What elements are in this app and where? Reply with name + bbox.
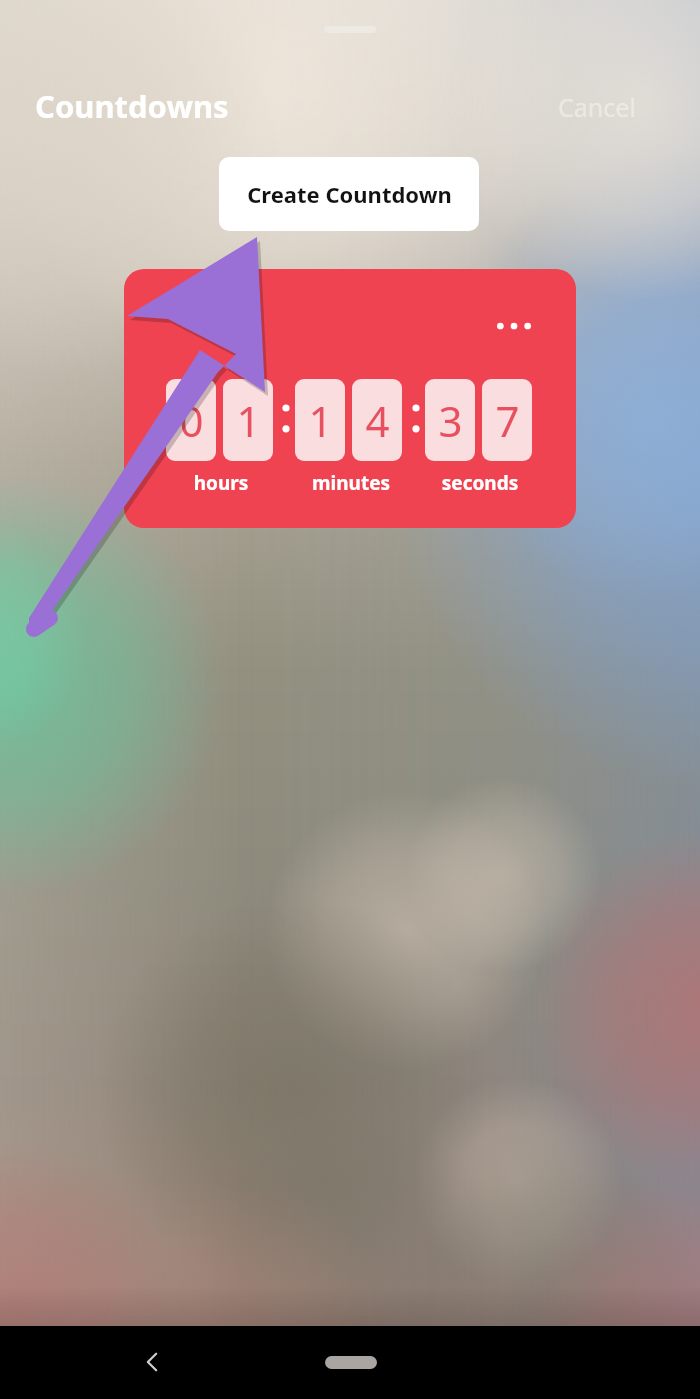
- button[interactable]: More options: [486, 306, 542, 346]
- staticText: seconds: [423, 470, 537, 496]
- button[interactable]: Create Countdown: [219, 157, 479, 231]
- button[interactable]: Cancel: [552, 86, 642, 128]
- staticText: Countdowns: [35, 85, 229, 127]
- button[interactable]: More options: [124, 269, 576, 528]
- staticText: 1: [236, 392, 261, 449]
- button[interactable]: Home: [325, 1356, 377, 1369]
- staticText: 3: [438, 392, 463, 449]
- staticText: minutes: [294, 470, 408, 496]
- button[interactable]: Back: [124, 1334, 180, 1390]
- staticText: 1: [308, 392, 333, 449]
- staticText: 4: [365, 392, 390, 449]
- staticText: 0: [179, 392, 204, 449]
- staticText: Cancel: [558, 90, 636, 124]
- staticText: Create Countdown: [247, 179, 452, 209]
- staticText: hours: [164, 470, 278, 496]
- staticText: 7: [495, 392, 520, 449]
